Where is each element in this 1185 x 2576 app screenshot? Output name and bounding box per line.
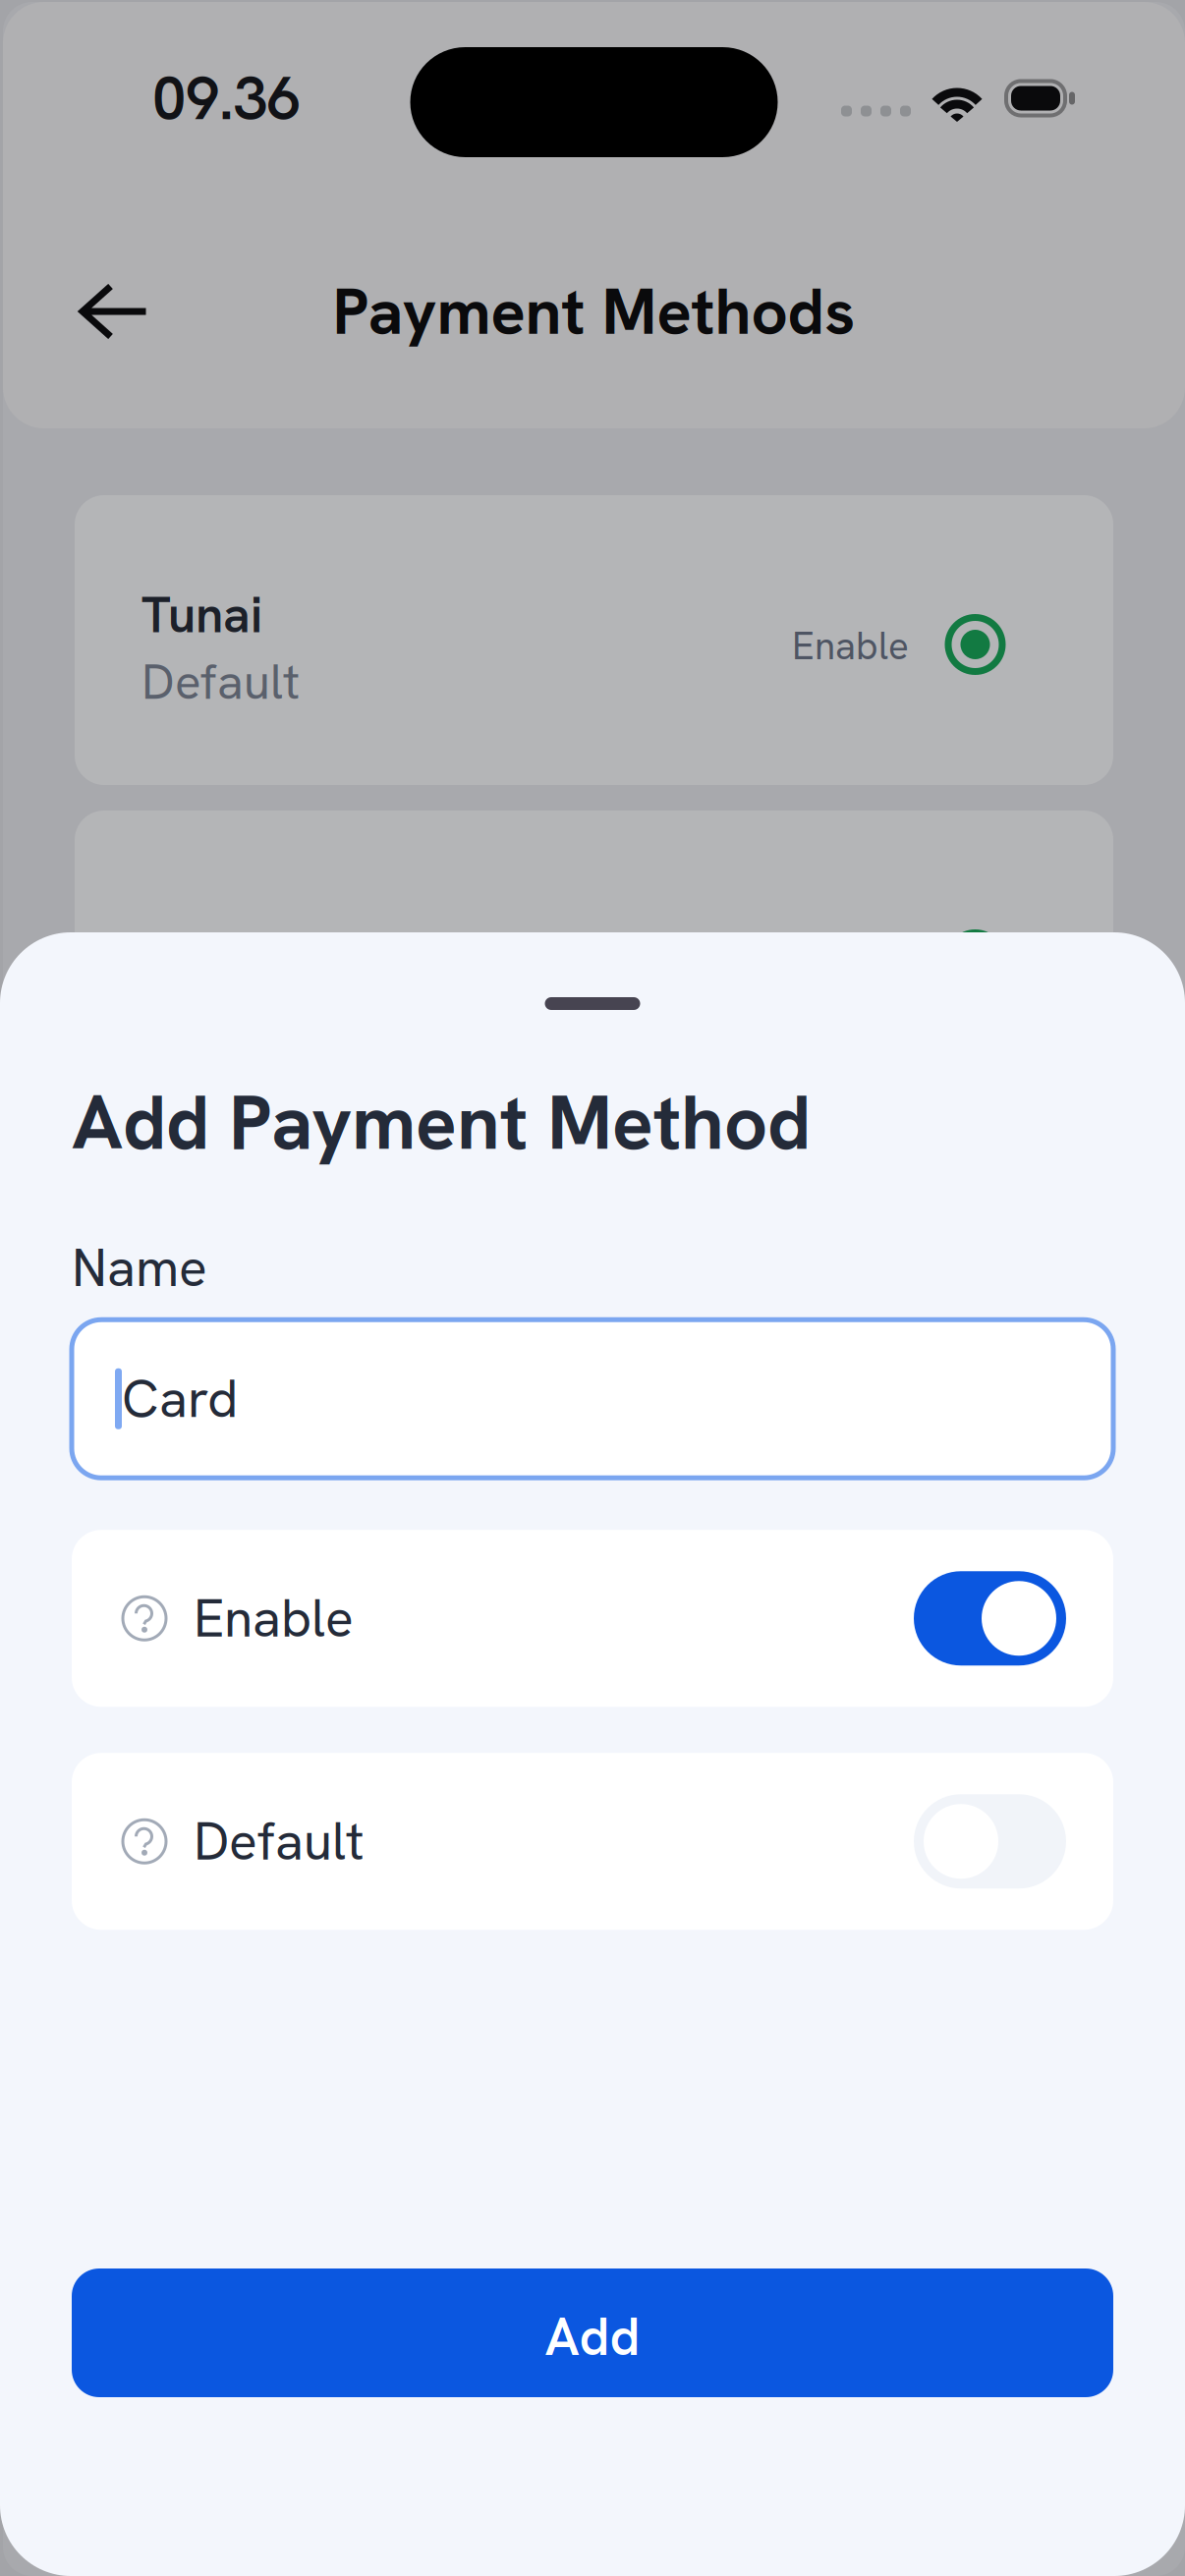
button[interactable]: Default — [72, 1753, 1113, 1930]
staticText: Enable — [792, 621, 909, 671]
button[interactable]: Enable — [72, 1530, 1113, 1707]
staticText: Payment Methods — [333, 270, 855, 353]
staticText: Name — [72, 1234, 207, 1302]
button[interactable]: Back — [55, 252, 173, 370]
staticText: 09.36 — [152, 59, 301, 137]
staticText: Card — [122, 1365, 238, 1433]
staticText: Default — [194, 1807, 364, 1876]
staticText: Add Payment Method — [72, 1073, 811, 1172]
staticText: Transfer — [141, 931, 329, 996]
staticText: Add — [545, 2303, 640, 2371]
staticText: Enable — [194, 1584, 354, 1652]
staticText: Tunai — [141, 582, 262, 647]
button[interactable]: Add — [72, 2268, 1113, 2397]
staticText: Default — [141, 650, 300, 713]
